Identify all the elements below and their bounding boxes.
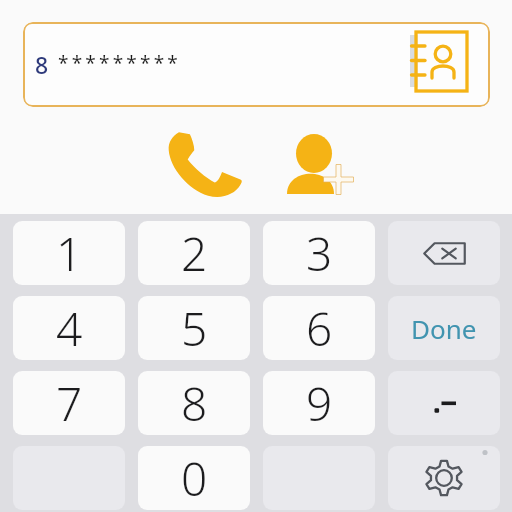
button[interactable]: 2: [138, 221, 250, 285]
staticText: 0: [181, 447, 208, 510]
button[interactable]: 1: [13, 221, 125, 285]
staticText: Done: [411, 311, 477, 346]
button[interactable]: [388, 221, 500, 285]
button[interactable]: Contacts: [404, 28, 478, 102]
button[interactable]: [388, 371, 500, 435]
button[interactable]: Call: [168, 131, 241, 197]
button[interactable]: 3: [263, 221, 375, 285]
staticText: 4: [56, 297, 83, 360]
button[interactable]: 4: [13, 296, 125, 360]
staticText: 8: [35, 49, 49, 80]
staticText: 8: [181, 372, 208, 435]
button[interactable]: 5: [138, 296, 250, 360]
staticText: 9: [306, 372, 333, 435]
staticText: 5: [181, 297, 208, 360]
staticText: 2: [181, 222, 208, 285]
button[interactable]: Add contact: [286, 131, 354, 197]
button[interactable]: 9: [263, 371, 375, 435]
button[interactable]: Done: [388, 296, 500, 360]
staticText: 1: [56, 222, 83, 285]
button[interactable]: 6: [263, 296, 375, 360]
staticText: 3: [306, 222, 333, 285]
staticText: *********: [58, 50, 182, 76]
staticText: 7: [56, 372, 83, 435]
button[interactable]: 8: [23, 22, 490, 107]
button[interactable]: 8: [138, 371, 250, 435]
button[interactable]: 7: [13, 371, 125, 435]
button[interactable]: 0: [138, 446, 250, 510]
staticText: 6: [306, 297, 333, 360]
button[interactable]: [388, 446, 500, 510]
